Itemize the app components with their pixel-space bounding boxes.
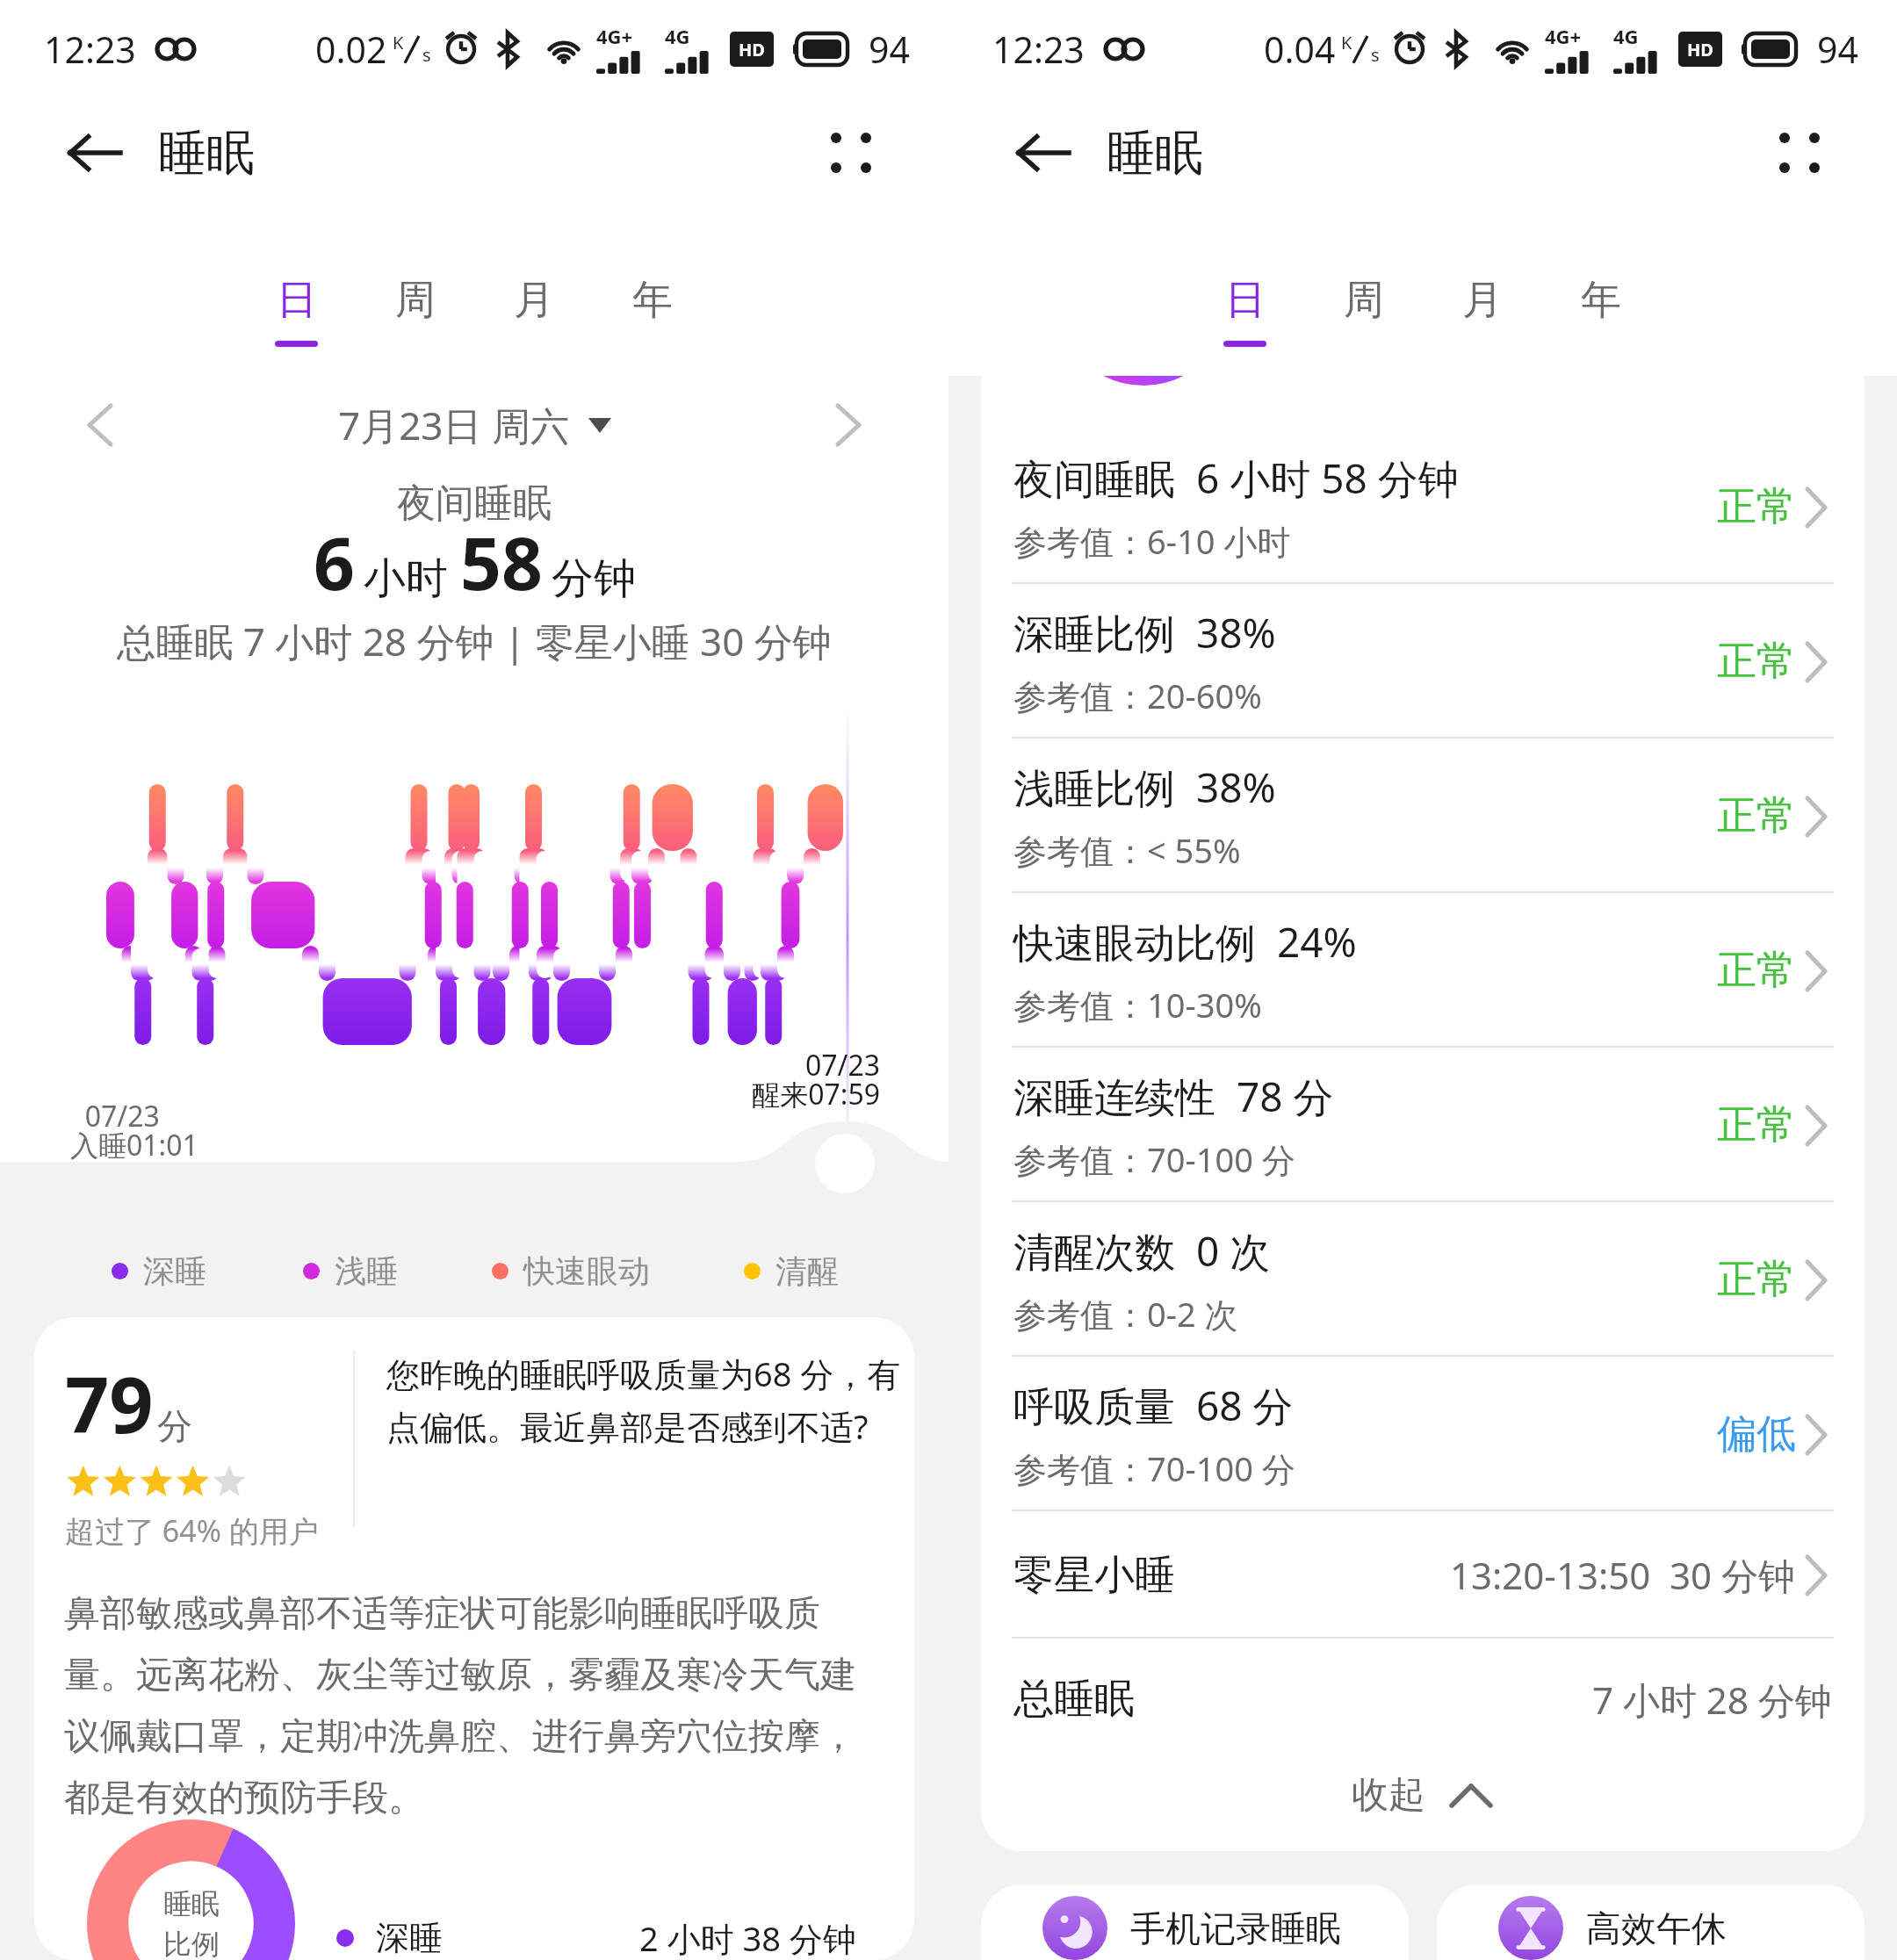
button[interactable]: 收起 (981, 1760, 1865, 1851)
staticText: 周 (1344, 275, 1384, 326)
staticText: 月 (1462, 275, 1503, 326)
staticText: 4G+ (1545, 23, 1582, 49)
staticText: 79 (65, 1351, 154, 1456)
button[interactable]: 高效午休 (1437, 1884, 1865, 1960)
button[interactable]: 清醒次数 0 次 (981, 1202, 1865, 1357)
staticText: 日 (277, 275, 317, 326)
button[interactable]: 79 (34, 1317, 914, 1960)
button[interactable]: 零星小睡 (981, 1511, 1865, 1639)
staticText: 参考值：< 55% (1013, 827, 1241, 873)
staticText: 清醒次数 0 次 (1013, 1223, 1271, 1279)
staticText: 7月23日 周六 (338, 399, 569, 451)
button[interactable]: Next day (817, 393, 880, 457)
staticText: 参考值：6-10 小时 (1013, 518, 1291, 564)
staticText: 12:23 (44, 25, 136, 74)
button[interactable]: 快速眼动比例 24% (981, 893, 1865, 1048)
button[interactable]: 呼吸质量 68 分 (981, 1357, 1865, 1511)
staticText: 总睡眠 7 小时 28 分钟 | 零星小睡 30 分钟 (0, 615, 948, 667)
staticText: 总睡眠 (1013, 1674, 1135, 1725)
staticText: 58 (460, 513, 543, 611)
staticText: 鼻部敏感或鼻部不适等症状可能影响睡眠呼吸质量。远离花粉、灰尘等过敏原，雾霾及寒冷… (64, 1591, 884, 1820)
button[interactable]: More options (1751, 104, 1848, 201)
staticText: 0.02 (315, 25, 387, 74)
button[interactable]: More options (803, 104, 899, 201)
staticText: 快速眼动比例 24% (1013, 914, 1357, 969)
staticText: 正常 (1717, 1100, 1796, 1150)
staticText: 快速眼动 (523, 1251, 650, 1291)
staticText: 深睡 (143, 1251, 206, 1291)
staticText: s (422, 43, 431, 67)
staticText: K (1341, 31, 1352, 54)
staticText: 分钟 (552, 552, 636, 605)
button[interactable]: 月 (474, 267, 593, 376)
staticText: 收起 (1352, 1772, 1425, 1819)
button[interactable]: 深睡连续性 78 分 (981, 1048, 1865, 1202)
staticText: 偏低 (1717, 1409, 1796, 1459)
staticText: 参考值：70-100 分 (1013, 1136, 1295, 1182)
staticText: 参考值：70-100 分 (1013, 1445, 1295, 1491)
button[interactable]: 浅睡比例 38% (981, 739, 1865, 893)
staticText: 07/23 醒来07:59 (704, 1046, 880, 1113)
button[interactable]: 月 (1423, 267, 1541, 376)
staticText: 深睡 (376, 1917, 443, 1959)
staticText: 周 (395, 275, 436, 326)
staticText: 13:20-13:50 30 分钟 (1450, 1550, 1796, 1600)
staticText: 07/23 入睡01:01 (70, 1097, 198, 1164)
staticText: 月 (514, 275, 554, 326)
staticText: 4G+ (596, 23, 633, 49)
staticText: 参考值：0-2 次 (1013, 1291, 1238, 1337)
staticText: HD (1687, 38, 1713, 61)
staticText: HD (739, 38, 765, 61)
staticText: 清醒 (775, 1251, 839, 1291)
staticText: 12:23 (992, 25, 1085, 74)
staticText: 高效午休 (1586, 1906, 1850, 1950)
staticText: 夜间睡眠 6 小时 58 分钟 (1013, 450, 1459, 506)
staticText: 年 (1581, 275, 1621, 326)
staticText: 比例 (163, 1927, 220, 1960)
button[interactable]: 深睡比例 38% (981, 584, 1865, 739)
button[interactable]: 年 (1541, 267, 1660, 376)
staticText: 0.04 (1264, 25, 1336, 74)
button[interactable]: 周 (356, 267, 474, 376)
button[interactable]: Back (53, 111, 137, 195)
staticText: 参考值：10-30% (1013, 982, 1262, 1027)
staticText: 您昨晚的睡眠呼吸质量为68 分，有点偏低。最近鼻部是否感到不适? (386, 1351, 905, 1449)
staticText: 正常 (1717, 482, 1796, 532)
staticText: 浅睡 (335, 1251, 398, 1291)
staticText: 深睡连续性 78 分 (1013, 1069, 1334, 1124)
button[interactable]: Scroll indicator (815, 1134, 875, 1193)
staticText: 睡眠 (163, 1886, 220, 1921)
staticText: s (1371, 43, 1380, 67)
staticText: 睡眠 (1107, 123, 1203, 184)
staticText: 参考值：20-60% (1013, 673, 1262, 718)
staticText: 睡眠 (158, 123, 255, 184)
button[interactable]: 周 (1304, 267, 1423, 376)
staticText: 正常 (1717, 791, 1796, 841)
staticText: 日 (1225, 275, 1266, 326)
staticText: 4G (1613, 23, 1639, 49)
button[interactable]: 年 (593, 267, 711, 376)
staticText: 7 小时 28 分钟 (1592, 1675, 1832, 1725)
button[interactable]: 日 (1186, 267, 1304, 376)
staticText: 分 (157, 1404, 192, 1448)
staticText: 正常 (1717, 637, 1796, 687)
staticText: 浅睡比例 38% (1013, 760, 1276, 815)
button[interactable]: Previous day (69, 393, 132, 457)
staticText: 夜间睡眠 (0, 479, 948, 528)
staticText: 6 (314, 513, 355, 611)
staticText: 小时 (364, 552, 448, 605)
staticText: 年 (632, 275, 673, 326)
staticText: 手机记录睡眠 (1130, 1906, 1394, 1950)
staticText: 超过了 64% 的用户 (65, 1510, 319, 1551)
staticText: 2 小时 38 分钟 (639, 1915, 856, 1960)
staticText: K (393, 31, 404, 54)
button[interactable]: 日 (237, 267, 356, 376)
staticText: 94 (1817, 25, 1858, 74)
staticText: 正常 (1717, 1255, 1796, 1305)
button[interactable]: Back (1001, 111, 1086, 195)
staticText: 正常 (1717, 946, 1796, 996)
button[interactable]: 夜间睡眠 6 小时 58 分钟 (981, 429, 1865, 584)
button[interactable]: 手机记录睡眠 (981, 1884, 1409, 1960)
staticText: 零星小睡 (1013, 1550, 1175, 1601)
staticText: 4G (665, 23, 690, 49)
